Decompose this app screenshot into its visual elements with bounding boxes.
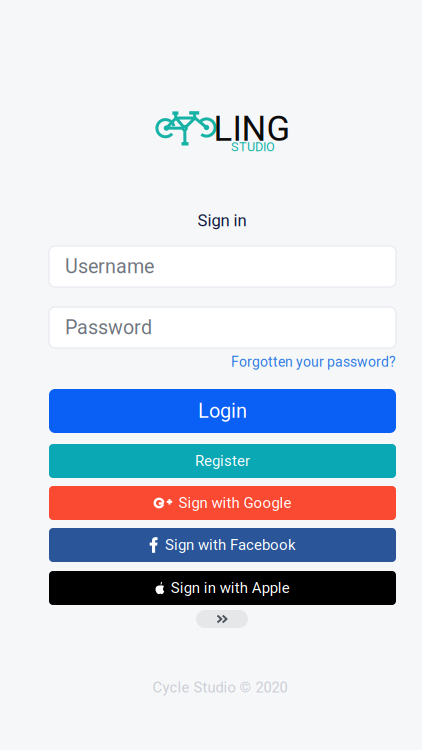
staticText: Sign with Facebook [165, 536, 296, 554]
button[interactable]: Forgotten your password? [49, 353, 396, 371]
button[interactable]: Sign with Facebook [49, 528, 396, 562]
staticText: Sign with Google [178, 494, 291, 512]
button[interactable]: Sign in with Apple [49, 571, 396, 605]
staticText: STUDIO [231, 140, 275, 154]
staticText: Sign in [197, 211, 246, 230]
button[interactable]: More sign-in options [196, 610, 248, 628]
staticText: Forgotten your password? [231, 354, 396, 370]
staticText: Login [198, 399, 247, 423]
staticText: Username [65, 255, 154, 278]
staticText: Password [65, 316, 152, 339]
button[interactable]: Register [49, 444, 396, 478]
staticText: LING [213, 109, 290, 149]
staticText: Cycle Studio © 2020 [152, 679, 287, 696]
button[interactable]: Login [49, 389, 396, 433]
staticText: Register [195, 452, 250, 470]
button[interactable]: Sign with Google [49, 486, 396, 520]
staticText: Sign in with Apple [171, 579, 290, 597]
